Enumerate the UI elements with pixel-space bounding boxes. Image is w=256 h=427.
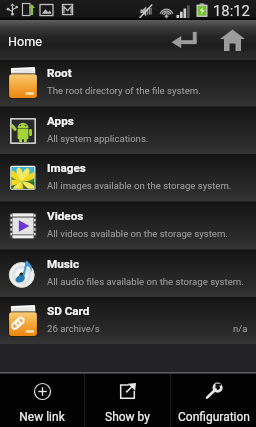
staticText: n/a [233, 323, 248, 334]
button[interactable]: Configuration [171, 374, 256, 427]
staticText: 26 archive/s [47, 323, 100, 334]
staticText: Home [8, 34, 42, 49]
staticText: 18:12 [213, 2, 250, 19]
staticText: The root directory of the file system. [47, 85, 201, 96]
button[interactable]: Show by [85, 374, 170, 427]
button[interactable]: Videos [0, 202, 256, 250]
staticText: Root [47, 66, 72, 80]
staticText: All videos available on the storage syst… [47, 228, 228, 239]
staticText: Show by [105, 410, 150, 424]
button[interactable]: Home [212, 20, 256, 60]
button[interactable]: Music [0, 250, 256, 298]
staticText: Music [47, 257, 79, 271]
staticText: All images available on the storage syst… [47, 180, 232, 191]
button[interactable]: Images [0, 154, 256, 202]
staticText: All audio files available on the storage… [47, 276, 244, 287]
staticText: Videos [47, 209, 84, 223]
button[interactable]: Go up [163, 20, 206, 60]
staticText: All system applications. [47, 133, 149, 144]
button[interactable]: New link [0, 374, 84, 427]
staticText: SD Card [47, 304, 90, 318]
staticText: Apps [47, 114, 74, 128]
button[interactable]: Root [0, 59, 256, 107]
staticText: New link [19, 410, 65, 424]
button[interactable]: SD Card [0, 297, 256, 345]
button[interactable]: Apps [0, 107, 256, 155]
staticText: Configuration [178, 410, 250, 424]
staticText: Images [47, 161, 86, 175]
